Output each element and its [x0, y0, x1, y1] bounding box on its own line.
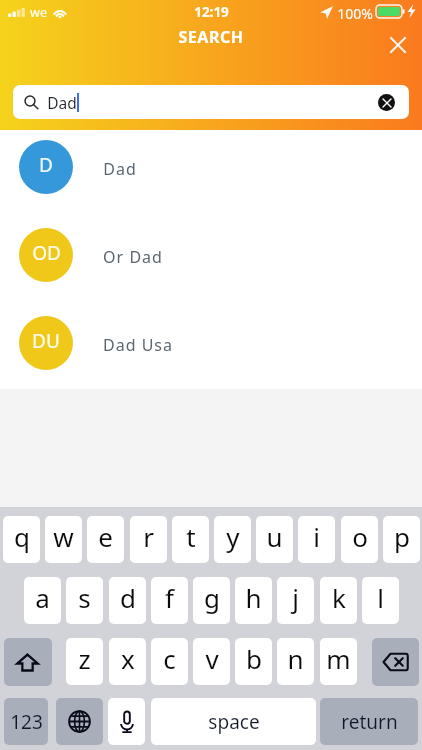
button[interactable]: v — [193, 638, 230, 685]
button[interactable]: h — [235, 577, 272, 624]
staticText: d — [120, 580, 136, 615]
button[interactable]: l — [362, 577, 399, 624]
button[interactable]: Dad — [13, 85, 409, 119]
button[interactable]: p — [383, 516, 420, 563]
staticText: m — [326, 641, 351, 676]
button[interactable]: a — [24, 577, 61, 624]
staticText: 123 — [10, 709, 43, 735]
button[interactable]: j — [277, 577, 314, 624]
staticText: w — [53, 519, 74, 554]
button[interactable]: q — [3, 516, 40, 563]
button[interactable]: DU — [0, 316, 422, 370]
button[interactable]: OD — [0, 228, 422, 282]
staticText: u — [266, 519, 283, 554]
staticText: DU — [32, 328, 60, 354]
button[interactable]: c — [151, 638, 188, 685]
staticText: s — [78, 580, 91, 615]
button[interactable]: i — [298, 516, 335, 563]
button[interactable]: b — [235, 638, 272, 685]
button[interactable]: k — [320, 577, 357, 624]
button[interactable]: x — [109, 638, 146, 685]
button[interactable]: f — [151, 577, 188, 624]
button[interactable]: Change language — [56, 698, 103, 745]
staticText: e — [98, 519, 113, 554]
button[interactable]: y — [214, 516, 251, 563]
staticText: Dad Usa — [103, 334, 173, 356]
staticText: c — [163, 641, 176, 676]
button[interactable]: return — [320, 698, 418, 745]
button[interactable]: Backspace — [372, 638, 419, 686]
button[interactable]: Clear text — [378, 94, 395, 111]
staticText: h — [245, 580, 262, 615]
button[interactable]: d — [109, 577, 146, 624]
button[interactable]: D — [0, 140, 422, 194]
button[interactable]: r — [130, 516, 167, 563]
staticText: l — [377, 580, 384, 615]
staticText: a — [35, 580, 50, 615]
staticText: f — [165, 580, 174, 615]
staticText: p — [394, 519, 410, 554]
button[interactable]: u — [256, 516, 293, 563]
staticText: t — [186, 519, 196, 554]
button[interactable]: w — [45, 516, 82, 563]
staticText: o — [352, 519, 368, 554]
button[interactable]: space — [151, 698, 316, 745]
staticText: n — [287, 641, 304, 676]
staticText: j — [292, 580, 299, 615]
button[interactable]: Numbers — [4, 698, 48, 745]
staticText: q — [14, 519, 30, 554]
staticText: b — [246, 641, 262, 676]
staticText: return — [341, 709, 398, 735]
button[interactable]: Dictate — [108, 698, 145, 745]
button[interactable]: Close — [383, 30, 413, 60]
staticText: z — [78, 641, 91, 676]
staticText: i — [313, 519, 320, 554]
button[interactable]: Shift — [4, 638, 52, 686]
staticText: space — [208, 709, 260, 735]
staticText: 100% — [337, 4, 373, 23]
staticText: y — [226, 519, 240, 554]
staticText: g — [204, 580, 220, 615]
staticText: Dad — [47, 92, 77, 113]
staticText: v — [205, 641, 219, 676]
staticText: OD — [32, 240, 61, 266]
button[interactable]: n — [277, 638, 314, 685]
button[interactable]: g — [193, 577, 230, 624]
staticText: we — [30, 4, 47, 21]
staticText: SEARCH — [178, 26, 244, 48]
staticText: 12:19 — [194, 3, 229, 21]
button[interactable]: s — [66, 577, 103, 624]
staticText: k — [332, 580, 346, 615]
button[interactable]: e — [87, 516, 124, 563]
button[interactable]: t — [172, 516, 209, 563]
button[interactable]: z — [66, 638, 103, 685]
staticText: D — [39, 152, 53, 178]
button[interactable]: m — [320, 638, 357, 685]
staticText: x — [121, 641, 135, 676]
staticText: Dad — [103, 158, 137, 180]
staticText: r — [143, 519, 154, 554]
staticText: Or Dad — [103, 246, 163, 268]
button[interactable]: o — [341, 516, 378, 563]
